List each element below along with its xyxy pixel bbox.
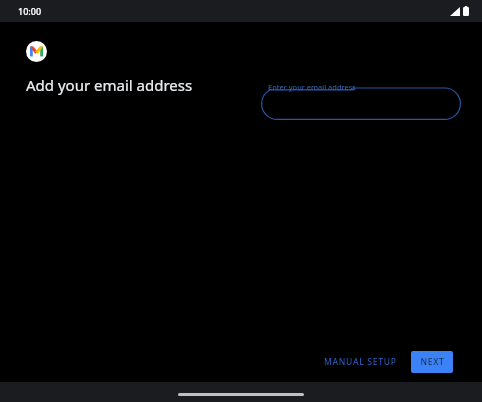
button[interactable]: MANUAL SETUP [316, 350, 405, 374]
staticText: NEXT [420, 356, 445, 368]
staticText: MANUAL SETUP [324, 356, 397, 368]
button[interactable]: NEXT [411, 351, 453, 373]
staticText: Add your email address [26, 75, 193, 95]
button[interactable]: Enter your email address [261, 80, 461, 120]
staticText: 10:00 [18, 5, 42, 17]
staticText: Enter your email address [268, 82, 356, 92]
